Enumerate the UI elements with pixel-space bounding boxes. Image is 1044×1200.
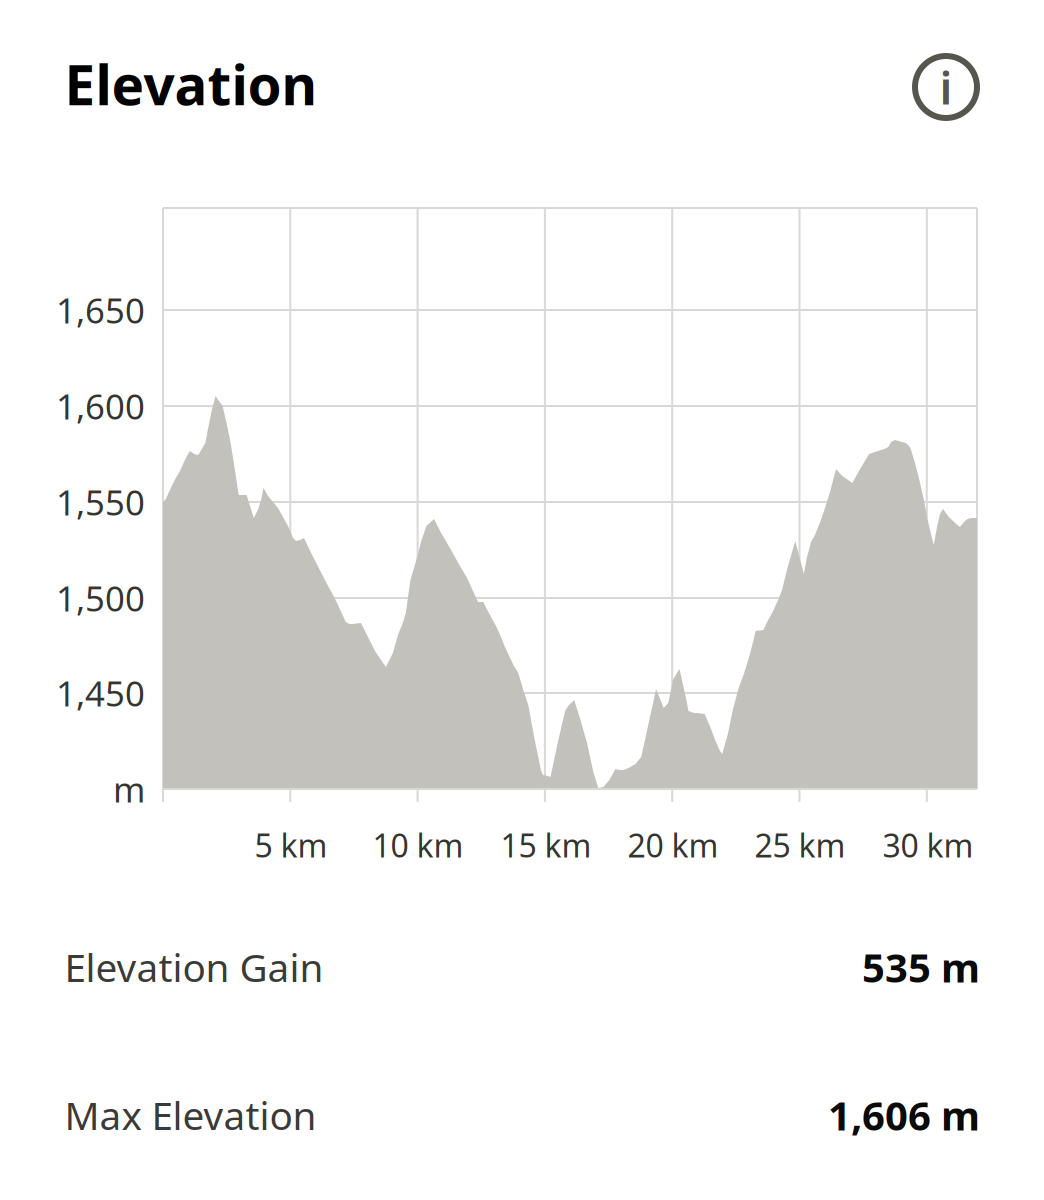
staticText: m [113, 766, 145, 812]
staticText: 10 km [372, 824, 463, 866]
staticText: i [939, 57, 952, 117]
staticText: 20 km [627, 824, 718, 866]
staticText: 1,550 [56, 479, 145, 525]
staticText: 1,650 [56, 287, 145, 333]
staticText: 5 km [254, 824, 327, 866]
staticText: 1,606 m [828, 1088, 980, 1141]
staticText: 535 m [862, 940, 980, 993]
staticText: 1,450 [56, 670, 145, 716]
staticText: 25 km [754, 824, 845, 866]
button[interactable]: Info [906, 47, 986, 127]
staticText: Elevation Gain [64, 941, 323, 993]
staticText: 1,500 [56, 575, 145, 621]
staticText: Max Elevation [64, 1089, 316, 1141]
staticText: 30 km [882, 824, 973, 866]
staticText: 1,600 [56, 383, 145, 429]
staticText: 15 km [500, 824, 591, 866]
staticText: Elevation [64, 48, 317, 120]
